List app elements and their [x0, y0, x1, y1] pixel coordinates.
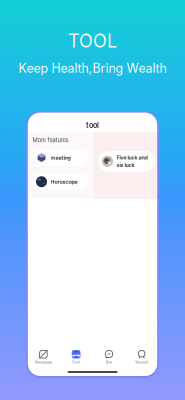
- staticText: Chat: [105, 360, 112, 364]
- staticText: six luck: [116, 162, 134, 168]
- button[interactable]: Chat: [92, 350, 125, 364]
- staticText: More features: [32, 137, 68, 144]
- staticText: Five luck and: [116, 154, 147, 161]
- button[interactable]: Tools: [60, 350, 93, 364]
- button[interactable]: Homepage: [27, 350, 60, 364]
- staticText: Keep Health,Bring Wealth: [18, 61, 166, 76]
- staticText: meeting: [50, 154, 70, 161]
- button[interactable]: meeting: [32, 150, 88, 166]
- staticText: Homepage: [35, 360, 52, 364]
- staticText: Yourself: [135, 360, 148, 364]
- staticText: Tools: [72, 360, 81, 364]
- staticText: TOOL: [68, 30, 117, 52]
- button[interactable]: Five luck and: [98, 151, 155, 172]
- button[interactable]: Horoscope: [32, 174, 88, 190]
- staticText: Horoscope: [50, 178, 77, 185]
- button[interactable]: Yourself: [125, 350, 158, 364]
- staticText: tool: [86, 121, 99, 130]
